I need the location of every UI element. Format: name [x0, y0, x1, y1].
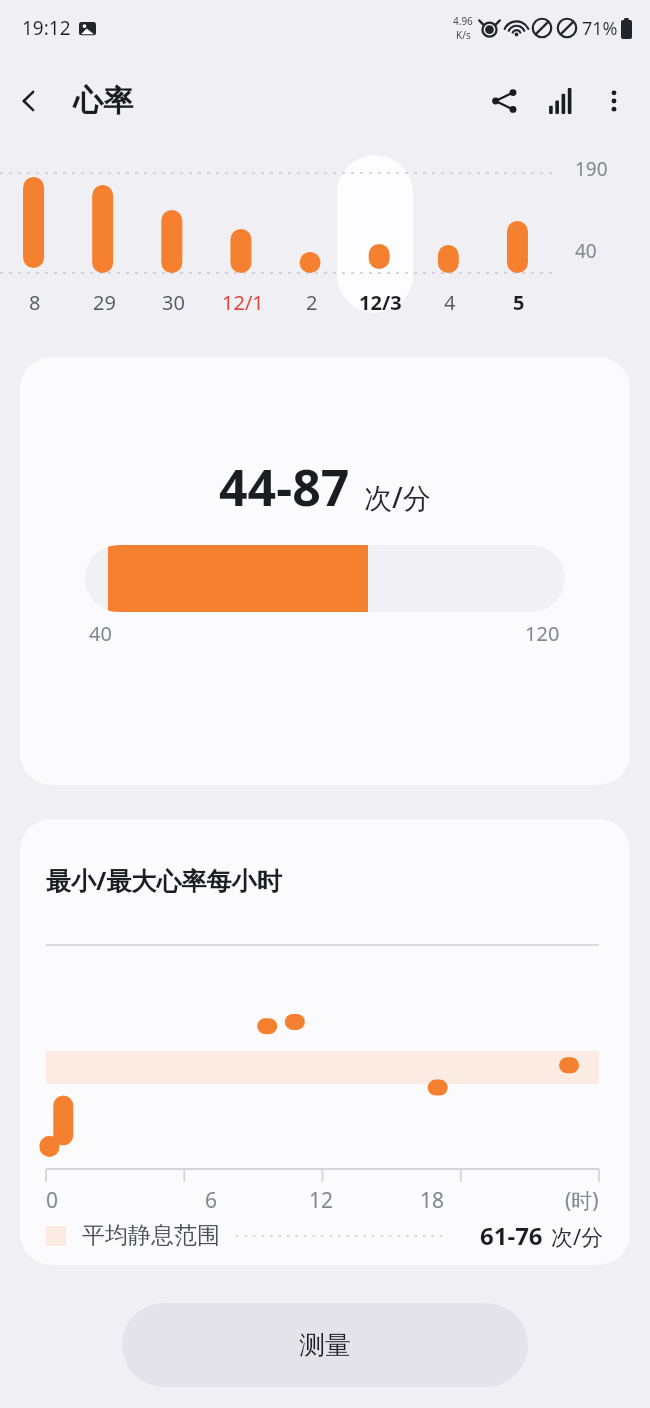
staticText: 12 — [309, 1186, 334, 1215]
button[interactable]: 44-87 — [20, 357, 630, 785]
button[interactable]: More options — [588, 75, 640, 127]
staticText: 心率 — [73, 82, 133, 120]
staticText: 44-87 — [219, 453, 350, 521]
button[interactable]: Chart — [532, 73, 588, 129]
staticText: 12/3 — [359, 289, 402, 316]
staticText: 40 — [575, 238, 597, 264]
staticText: 61-76 — [480, 1219, 543, 1252]
staticText: 18 — [420, 1186, 445, 1215]
staticText: 次/分 — [551, 1221, 604, 1251]
staticText: 最小/最大心率每小时 — [46, 863, 282, 897]
staticText: 0 — [46, 1186, 59, 1215]
staticText: 19:12 — [22, 15, 71, 41]
staticText: 29 — [93, 289, 116, 316]
button[interactable]: 测量 — [122, 1303, 528, 1387]
button[interactable] — [337, 155, 413, 313]
staticText: 12/1 — [222, 289, 264, 316]
button[interactable]: Back — [0, 72, 58, 130]
staticText: 40 — [89, 620, 112, 647]
button[interactable]: 最小/最大心率每小时 — [20, 819, 630, 1265]
staticText: 4 — [444, 289, 456, 316]
staticText: 测量 — [299, 1329, 351, 1362]
staticText: 2 — [306, 289, 318, 316]
staticText: (时) — [565, 1186, 599, 1215]
staticText: 71% — [582, 16, 618, 41]
staticText: 30 — [162, 289, 185, 316]
staticText: 190 — [575, 156, 608, 182]
staticText: 次/分 — [364, 478, 431, 516]
staticText: 120 — [525, 620, 560, 647]
staticText: 4.96 — [453, 14, 473, 28]
staticText: 5 — [513, 289, 525, 316]
button[interactable]: Share — [476, 73, 532, 129]
staticText: 8 — [29, 289, 41, 316]
staticText: 6 — [205, 1186, 218, 1215]
staticText: 平均静息范围 — [82, 1221, 220, 1250]
staticText: K/s — [456, 28, 471, 42]
